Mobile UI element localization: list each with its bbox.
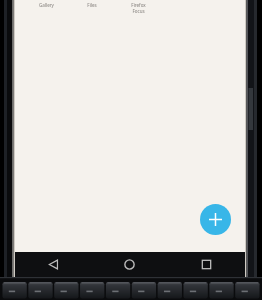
button[interactable]: Files (69, 0, 115, 8)
staticText: Gallery (39, 2, 54, 8)
button[interactable]: Firefox (115, 0, 161, 14)
staticText: Firefox (131, 2, 146, 8)
button[interactable]: Back (15, 252, 91, 277)
button[interactable]: Add (200, 204, 231, 235)
button[interactable]: Recent apps (168, 252, 245, 277)
staticText: Files (87, 2, 97, 8)
button[interactable]: Home (91, 252, 168, 277)
staticText: Focus (132, 8, 145, 14)
button[interactable]: Gallery (23, 0, 69, 8)
